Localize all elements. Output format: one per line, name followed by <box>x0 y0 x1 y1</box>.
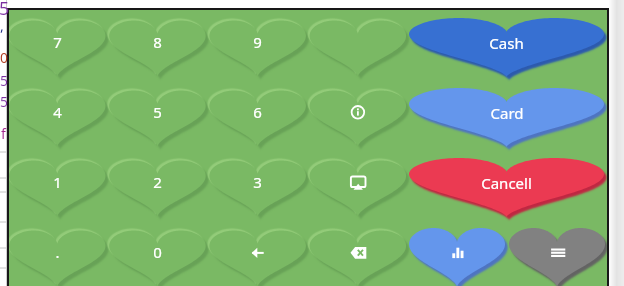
button[interactable]: Menu <box>509 228 605 286</box>
staticText: 0 <box>0 48 9 67</box>
staticText: 1 <box>53 172 62 192</box>
button[interactable]: Card <box>409 87 604 139</box>
button[interactable]: 6 <box>209 84 306 140</box>
staticText: . <box>55 242 60 262</box>
staticText: 0 <box>153 242 162 262</box>
button[interactable]: 7 <box>9 14 106 70</box>
staticText: 4 <box>53 102 62 122</box>
staticText: 3 <box>253 172 262 192</box>
button[interactable]: 8 <box>109 14 206 70</box>
button[interactable]: Cash <box>409 17 604 69</box>
button[interactable]: Info <box>310 87 407 151</box>
button[interactable]: 2 <box>109 154 206 210</box>
staticText: Card <box>490 103 524 123</box>
button[interactable]: 9 <box>209 14 306 70</box>
staticText: 5 <box>0 71 9 90</box>
staticText: Cancell <box>481 173 532 193</box>
staticText: 9 <box>253 32 262 52</box>
staticText: 5 <box>0 92 9 111</box>
staticText: 5 <box>153 102 162 122</box>
staticText: 5 <box>0 0 10 21</box>
staticText: 2 <box>153 172 162 192</box>
button[interactable]: 4 <box>9 84 106 140</box>
button[interactable]: 5 <box>109 84 206 140</box>
staticText: 8 <box>153 32 162 52</box>
button[interactable]: Cancell <box>409 157 604 209</box>
staticText: 6 <box>253 102 262 122</box>
button[interactable]: 3 <box>209 154 306 210</box>
staticText: Cash <box>489 33 524 53</box>
button[interactable]: Backspace <box>310 227 407 286</box>
staticText: 7 <box>53 32 62 52</box>
button[interactable]: 1 <box>9 154 106 210</box>
staticText: , <box>0 16 4 35</box>
button[interactable]: Back <box>209 227 306 286</box>
button[interactable]: . <box>9 224 106 280</box>
button[interactable]: Present to screen <box>310 157 407 221</box>
button[interactable]: 0 <box>109 224 206 280</box>
button[interactable]: Reports <box>409 228 505 286</box>
staticText: f <box>1 124 6 143</box>
